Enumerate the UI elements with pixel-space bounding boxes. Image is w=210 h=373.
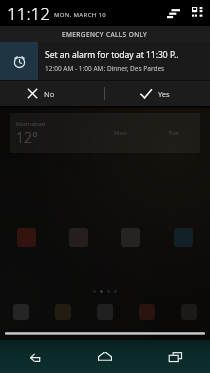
button[interactable]: Home [70,340,140,373]
staticText: Yes [158,89,170,99]
button[interactable]: Back [0,340,70,373]
staticText: Tue [147,129,200,137]
button[interactable]: Set an alarm for today at 11:30 P.. [0,42,210,80]
staticText: No [44,89,55,99]
staticText: Islamabad [16,120,46,128]
staticText: 11:12 [7,2,50,25]
staticText: MON, MARCH 10 [54,11,106,19]
button[interactable]: No [0,81,104,106]
staticText: 12° [16,128,38,147]
button[interactable]: Recent apps [140,340,210,373]
staticText: 12:00 AM - 1:00 AM: Dinner, Des Pardes [45,64,165,73]
staticText: Set an alarm for today at 11:30 P.. [45,49,179,61]
staticText: Mon [94,129,147,137]
button[interactable]: Yes [105,81,210,106]
staticText: EMERGENCY CALLS ONLY [62,30,148,39]
